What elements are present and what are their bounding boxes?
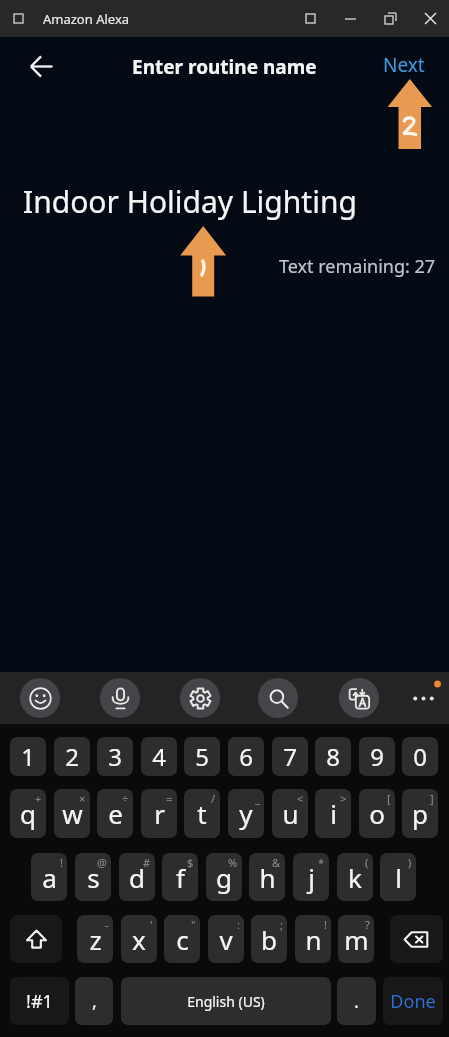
staticText: ' bbox=[150, 917, 153, 932]
staticText: u bbox=[282, 796, 299, 831]
staticText: Amazon Alexa bbox=[43, 10, 130, 28]
staticText: ) bbox=[408, 855, 412, 870]
staticText: 6 bbox=[239, 740, 253, 773]
staticText: l bbox=[395, 860, 402, 895]
staticText: !#1 bbox=[26, 989, 53, 1014]
button[interactable]: 8 bbox=[315, 737, 351, 776]
staticText: Indoor Holiday Lighting bbox=[23, 181, 357, 222]
button[interactable]: 9 bbox=[359, 737, 395, 776]
staticText: v bbox=[219, 922, 233, 957]
staticText: 7 bbox=[283, 740, 297, 773]
button[interactable]: l bbox=[380, 853, 416, 901]
staticText: 8 bbox=[326, 740, 340, 773]
button[interactable]: q bbox=[10, 789, 46, 838]
button[interactable]: w bbox=[54, 789, 90, 838]
button[interactable]: o bbox=[359, 789, 395, 838]
staticText: + bbox=[35, 791, 42, 806]
button[interactable]: Backspace bbox=[390, 915, 443, 963]
staticText: o bbox=[369, 796, 385, 831]
staticText: f bbox=[176, 860, 185, 895]
staticText: e bbox=[108, 796, 123, 831]
button[interactable]: y bbox=[228, 789, 264, 838]
button[interactable]: 4 bbox=[141, 737, 177, 776]
button[interactable]: v bbox=[208, 915, 244, 963]
staticText: n bbox=[305, 922, 322, 957]
staticText: = bbox=[166, 791, 173, 806]
button[interactable]: b bbox=[251, 915, 287, 963]
button[interactable]: 1 bbox=[10, 737, 46, 776]
staticText: 4 bbox=[152, 740, 166, 773]
staticText: z bbox=[89, 922, 102, 957]
button[interactable]: Restore bbox=[370, 0, 410, 37]
staticText: 0 bbox=[413, 740, 427, 773]
button[interactable]: emoji bbox=[20, 678, 60, 718]
button[interactable]: , bbox=[75, 977, 113, 1025]
button[interactable]: Close bbox=[410, 0, 449, 37]
staticText: h bbox=[259, 860, 276, 895]
staticText: 1 bbox=[21, 740, 35, 773]
staticText: 2 bbox=[65, 740, 79, 773]
staticText: $ bbox=[187, 855, 194, 870]
button[interactable]: c bbox=[164, 915, 200, 963]
staticText: : bbox=[237, 917, 240, 932]
button[interactable]: n bbox=[295, 915, 331, 963]
other: Shift bbox=[23, 926, 50, 953]
button[interactable]: 5 bbox=[184, 737, 220, 776]
button[interactable]: s bbox=[75, 853, 111, 901]
staticText: @ bbox=[97, 855, 107, 870]
button[interactable]: 0 bbox=[402, 737, 438, 776]
button[interactable]: settings bbox=[180, 678, 220, 718]
button[interactable]: Done bbox=[383, 977, 443, 1025]
staticText: 9 bbox=[370, 740, 384, 773]
staticText: Next bbox=[383, 52, 425, 78]
button[interactable]: m bbox=[338, 915, 374, 963]
button[interactable]: j bbox=[293, 853, 329, 901]
staticText: Text remaining: 27 bbox=[279, 254, 436, 279]
button[interactable]: r bbox=[141, 789, 177, 838]
button[interactable]: z bbox=[77, 915, 113, 963]
button[interactable]: f bbox=[162, 853, 198, 901]
staticText: 3 bbox=[108, 740, 122, 773]
staticText: - bbox=[105, 917, 109, 932]
staticText: a bbox=[42, 860, 57, 895]
button[interactable]: English (US) bbox=[121, 977, 331, 1025]
staticText: s bbox=[87, 860, 100, 895]
staticText: 5 bbox=[195, 740, 209, 773]
staticText: * bbox=[318, 855, 325, 870]
button[interactable]: h bbox=[249, 853, 285, 901]
button[interactable]: mic bbox=[100, 678, 140, 718]
button[interactable]: d bbox=[119, 853, 155, 901]
button[interactable]: Shift bbox=[10, 915, 62, 963]
button[interactable]: g bbox=[206, 853, 242, 901]
button[interactable]: Minimize bbox=[330, 0, 370, 37]
button[interactable]: Back bbox=[18, 43, 64, 89]
button[interactable]: x bbox=[121, 915, 157, 963]
button[interactable]: Snap layout bbox=[290, 0, 330, 37]
button[interactable]: 3 bbox=[97, 737, 133, 776]
button[interactable]: more bbox=[403, 678, 443, 718]
button[interactable]: 7 bbox=[272, 737, 308, 776]
staticText: × bbox=[79, 791, 86, 806]
button[interactable]: t bbox=[184, 789, 220, 838]
button[interactable]: e bbox=[97, 789, 133, 838]
staticText: . bbox=[354, 989, 359, 1014]
button[interactable]: search bbox=[258, 678, 298, 718]
staticText: , bbox=[92, 989, 97, 1014]
button[interactable]: Next bbox=[361, 44, 449, 86]
staticText: c bbox=[176, 922, 189, 957]
button[interactable]: p bbox=[402, 789, 438, 838]
button[interactable]: 6 bbox=[228, 737, 264, 776]
button[interactable]: !#1 bbox=[10, 977, 69, 1025]
button[interactable]: . bbox=[337, 977, 376, 1025]
button[interactable]: 2 bbox=[54, 737, 90, 776]
staticText: x bbox=[132, 922, 146, 957]
staticText: g bbox=[216, 860, 232, 895]
staticText: r bbox=[154, 796, 165, 831]
button[interactable]: i bbox=[315, 789, 351, 838]
button[interactable]: k bbox=[337, 853, 373, 901]
staticText: English (US) bbox=[187, 992, 265, 1011]
button[interactable]: a bbox=[31, 853, 67, 901]
button[interactable]: u bbox=[272, 789, 308, 838]
staticText: q bbox=[20, 796, 36, 831]
button[interactable]: translate bbox=[339, 678, 379, 718]
